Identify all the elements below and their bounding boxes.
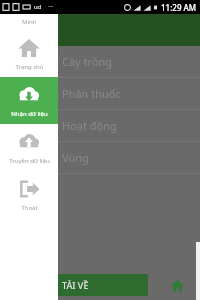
button[interactable]: Hoạt động [0, 110, 200, 141]
staticText: Hoạt động [62, 118, 117, 133]
button[interactable]: Vùng [0, 142, 200, 173]
staticText: Phân thuốc [62, 86, 121, 101]
button[interactable]: Phân thuốc [0, 78, 200, 109]
staticText: Nhận dữ liệu [11, 110, 48, 118]
button[interactable]: TẢI VỀ [2, 274, 148, 296]
staticText: Trang chủ [15, 63, 44, 71]
button[interactable]: Trang chủ [0, 30, 58, 77]
staticText: Thoát [21, 204, 38, 212]
staticText: Minh [22, 18, 37, 26]
button[interactable]: Cây trồng [0, 46, 200, 77]
staticText: TẢI VỀ [62, 279, 89, 291]
button[interactable]: Nhận dữ liệu [0, 77, 58, 124]
button[interactable]: Trang chủ [162, 270, 192, 300]
staticText: Cây trồng [62, 54, 113, 69]
staticText: Vùng [62, 150, 89, 165]
button[interactable]: Truyền dữ liệu [0, 124, 58, 171]
button[interactable]: Thoát [0, 171, 58, 218]
staticText: ··· [48, 2, 54, 12]
staticText: 11:29 AM [161, 2, 197, 13]
staticText: ud [34, 3, 42, 11]
staticText: Truyền dữ liệu [9, 157, 50, 165]
